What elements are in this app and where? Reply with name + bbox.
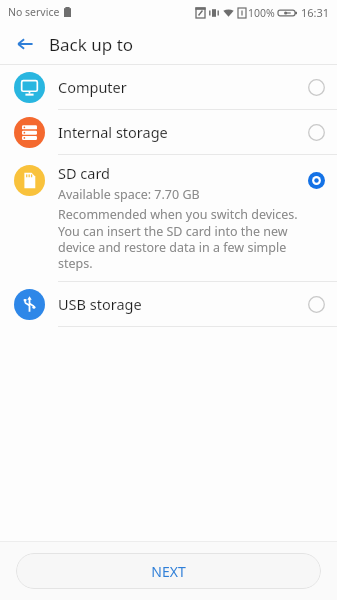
button[interactable]: NEXT (16, 553, 321, 589)
button[interactable]: USB storage (0, 282, 337, 326)
staticText: SD card (58, 163, 111, 183)
button[interactable]: Back (8, 27, 42, 61)
staticText: Back up to (49, 33, 134, 56)
staticText: Available space: 7.70 GB (58, 186, 200, 203)
button[interactable]: Internal storage (0, 110, 337, 154)
staticText: USB storage (58, 294, 142, 314)
staticText: 100% (248, 6, 275, 20)
staticText: Computer (58, 77, 127, 97)
button[interactable]: SD card (0, 155, 337, 281)
button[interactable]: Computer (0, 65, 337, 109)
staticText: Recommended when you switch devices. You… (58, 206, 301, 271)
staticText: 16:31 (301, 5, 330, 20)
staticText: NEXT (151, 562, 186, 581)
staticText: No service (8, 5, 60, 19)
staticText: Internal storage (58, 122, 168, 142)
